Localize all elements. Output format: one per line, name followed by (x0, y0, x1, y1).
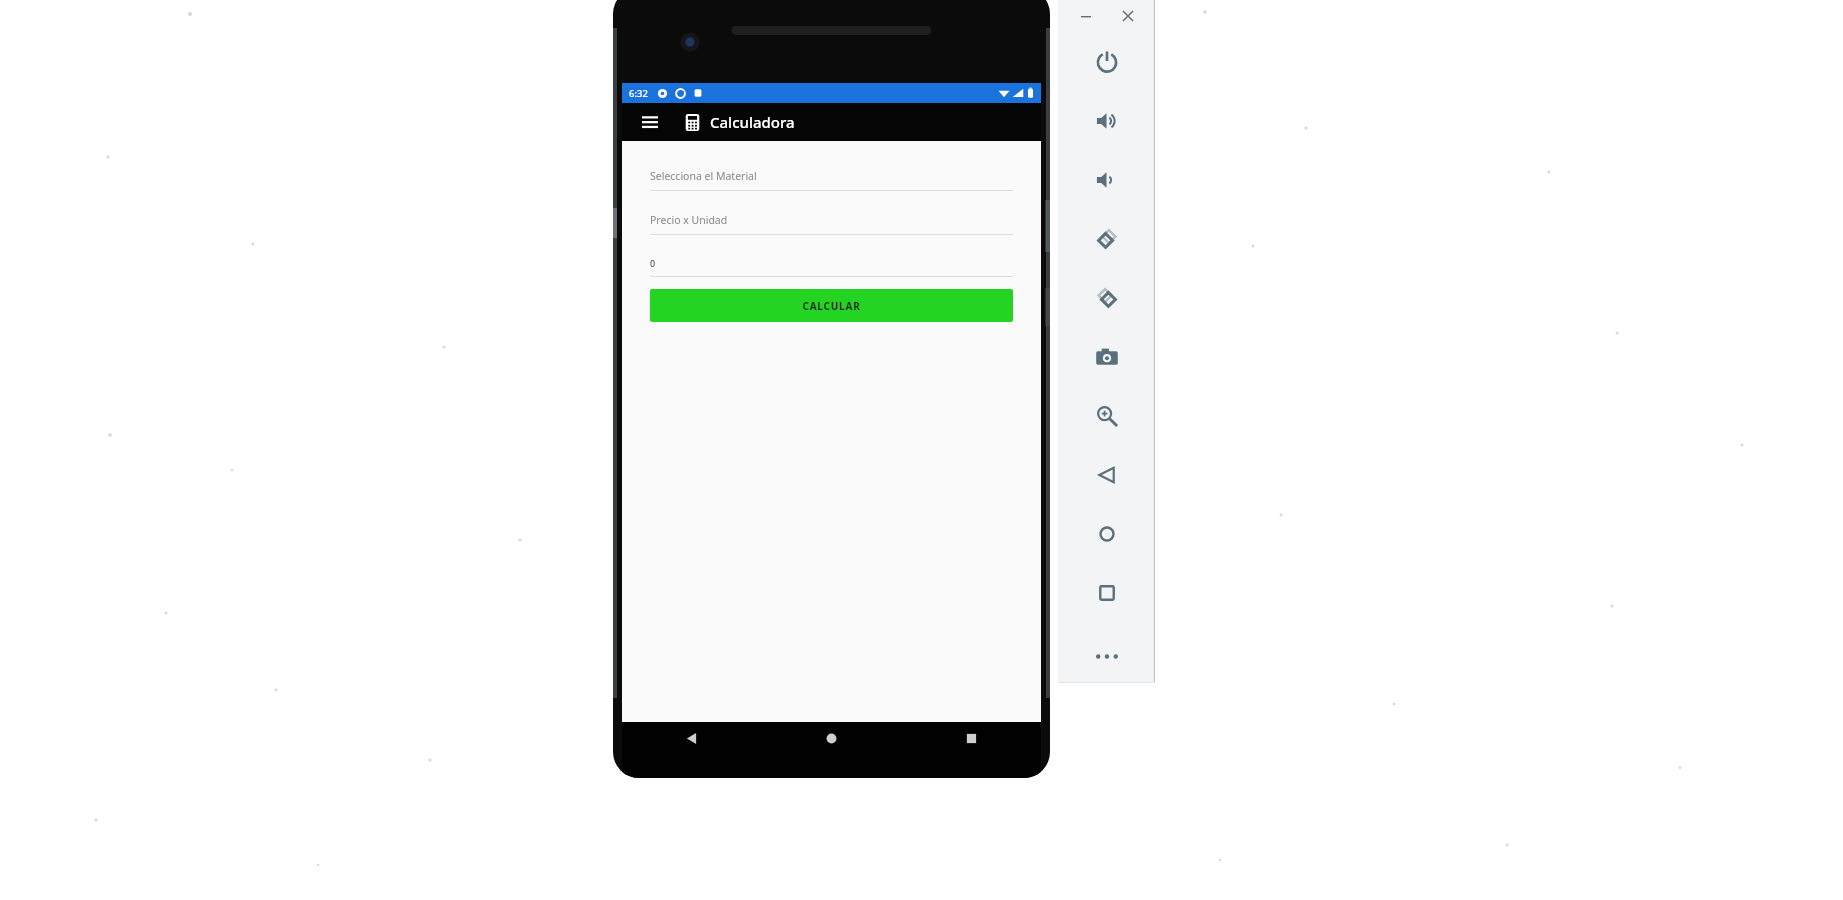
button[interactable]: Power (1058, 32, 1155, 91)
button[interactable]: Rotate right (1058, 268, 1155, 327)
button[interactable]: Home (1058, 504, 1155, 563)
button[interactable]: Back (1058, 445, 1155, 504)
button[interactable]: Take screenshot (1058, 327, 1155, 386)
staticText: CALCULAR (802, 299, 861, 313)
button[interactable]: Close (1115, 3, 1141, 29)
staticText: Selecciona el Material (650, 169, 757, 183)
staticText: 6:32 (629, 87, 648, 100)
button[interactable]: Back (622, 722, 761, 778)
button[interactable]: 0 (650, 257, 1013, 277)
button[interactable]: Minimize (1073, 3, 1099, 29)
button[interactable]: Overview (1058, 563, 1155, 622)
staticText: 0 (650, 257, 656, 269)
button[interactable]: Recent apps (901, 722, 1041, 778)
button[interactable]: More options (1058, 636, 1155, 676)
button[interactable]: Zoom (1058, 386, 1155, 445)
button[interactable]: Rotate left (1058, 209, 1155, 268)
button[interactable]: Home (761, 722, 901, 778)
staticText: Calculadora (710, 112, 795, 132)
button[interactable]: CALCULAR (650, 289, 1013, 322)
button[interactable]: Precio x Unidad (650, 213, 1013, 235)
button[interactable]: Volume up (1058, 91, 1155, 150)
staticText: Precio x Unidad (650, 213, 728, 227)
button[interactable]: Open navigation menu (638, 110, 662, 134)
button[interactable]: Selecciona el Material (650, 169, 1013, 191)
button[interactable]: Volume down (1058, 150, 1155, 209)
